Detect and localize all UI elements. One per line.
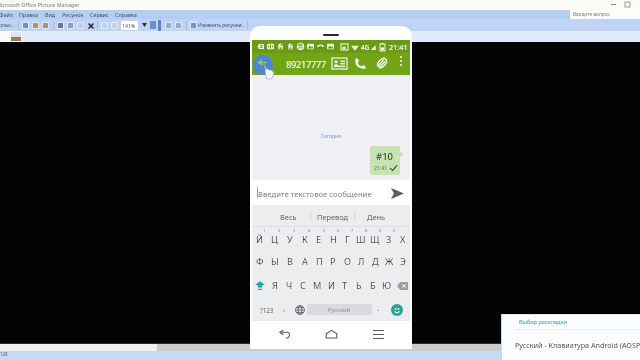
staticText: Выбор раскладки <box>519 318 567 326</box>
staticText: А <box>302 255 308 268</box>
button[interactable]: Ы <box>267 250 282 273</box>
staticText: Г <box>345 233 350 246</box>
button[interactable]: Ю <box>380 273 394 298</box>
staticText: Введите текстовое сообщение <box>258 189 372 199</box>
staticText: Я <box>272 279 278 292</box>
button[interactable]: Перевод <box>311 205 354 226</box>
staticText: 21:41 <box>374 164 388 171</box>
staticText: Т <box>342 279 348 292</box>
staticText: Э <box>400 255 406 268</box>
staticText: Русский - Клавиатура Android (AOSP) <box>515 340 640 350</box>
staticText: Е <box>316 233 322 246</box>
button[interactable]: Ш <box>354 227 368 250</box>
staticText: Ы <box>271 255 279 268</box>
staticText: Ч <box>286 279 293 292</box>
staticText: . <box>377 302 380 313</box>
button[interactable]: Home <box>318 322 344 346</box>
button[interactable]: С <box>296 273 310 298</box>
staticText: 6 <box>337 228 340 233</box>
button[interactable]: З <box>382 227 396 250</box>
staticText: О <box>344 255 351 268</box>
staticText: Й <box>256 233 263 246</box>
button[interactable]: Contact info <box>329 53 349 73</box>
button[interactable]: П <box>312 250 326 273</box>
staticText: 128 <box>0 351 8 357</box>
button[interactable]: А <box>297 250 312 273</box>
staticText: Microsoft Office Picture Manager <box>0 1 80 8</box>
button[interactable]: Ф <box>252 250 267 273</box>
button[interactable]: Call <box>350 53 370 73</box>
button[interactable]: Т <box>338 273 352 298</box>
staticText: И <box>328 279 335 292</box>
staticText: Изменить рисунки.. <box>198 22 245 29</box>
button[interactable]: Attach <box>372 53 392 73</box>
staticText: 0 <box>393 228 396 233</box>
button[interactable]: Back <box>271 322 297 346</box>
button[interactable]: Recent apps <box>365 322 391 346</box>
staticText: Справка <box>115 11 137 18</box>
staticText: 4G <box>361 43 370 52</box>
staticText: 5 <box>323 228 326 233</box>
button[interactable]: ?123 <box>255 298 279 321</box>
staticText: , <box>283 302 286 313</box>
button[interactable]: Б <box>366 273 380 298</box>
staticText: П <box>316 255 323 268</box>
button[interactable]: Ц <box>267 227 282 250</box>
button[interactable]: О <box>340 250 354 273</box>
button[interactable]: Ч <box>282 273 296 298</box>
staticText: Л <box>358 255 365 268</box>
button[interactable]: Х <box>396 227 410 250</box>
button[interactable]: Ж <box>382 250 396 273</box>
button[interactable]: Н <box>326 227 340 250</box>
button[interactable]: День <box>355 205 398 226</box>
staticText: 9 <box>379 228 382 233</box>
staticText: 4 <box>308 228 311 233</box>
staticText: 8 <box>365 228 368 233</box>
button[interactable]: , <box>277 298 291 321</box>
button[interactable]: Л <box>354 250 368 273</box>
staticText: рлык... <box>0 22 15 29</box>
button[interactable]: Г <box>340 227 354 250</box>
button[interactable]: Backspace <box>394 273 410 298</box>
button[interactable]: И <box>324 273 338 298</box>
staticText: З <box>386 233 392 246</box>
staticText: Вид <box>45 11 56 18</box>
button[interactable]: Й <box>252 227 267 250</box>
button[interactable]: . <box>371 298 385 321</box>
button[interactable]: Э <box>396 250 410 273</box>
button[interactable]: Е <box>312 227 326 250</box>
button[interactable]: Щ <box>368 227 382 250</box>
staticText: Сегодня <box>321 133 342 140</box>
staticText: Н <box>330 233 337 246</box>
button[interactable]: Ь <box>352 273 366 298</box>
button[interactable]: Я <box>268 273 282 298</box>
button[interactable]: Back <box>252 54 274 76</box>
button[interactable]: У <box>282 227 297 250</box>
staticText: С <box>300 279 306 292</box>
button[interactable]: В <box>282 250 297 273</box>
staticText: #10 <box>376 150 394 163</box>
button[interactable]: Русский <box>307 304 372 315</box>
button[interactable]: Р <box>326 250 340 273</box>
staticText: 3 <box>293 228 296 233</box>
staticText: Весь <box>280 212 297 222</box>
staticText: Д <box>372 255 379 268</box>
staticText: Б <box>370 279 376 292</box>
staticText: Сервис <box>90 11 109 18</box>
button[interactable]: Д <box>368 250 382 273</box>
staticText: Русский <box>328 306 351 314</box>
button[interactable]: Emoji <box>387 298 406 321</box>
button[interactable]: Shift <box>252 273 268 298</box>
button[interactable]: М <box>310 273 324 298</box>
staticText: Ф <box>256 255 264 268</box>
button[interactable]: К <box>297 227 312 250</box>
staticText: Ш <box>356 233 366 246</box>
staticText: День <box>367 212 386 222</box>
button[interactable]: More options <box>393 53 408 68</box>
button[interactable]: Send <box>388 184 406 202</box>
staticText: 7 <box>351 228 354 233</box>
staticText: 21:41 <box>389 42 408 52</box>
button[interactable]: Change keyboard language <box>293 298 307 321</box>
button[interactable]: Весь <box>266 205 310 226</box>
staticText: В <box>287 255 293 268</box>
